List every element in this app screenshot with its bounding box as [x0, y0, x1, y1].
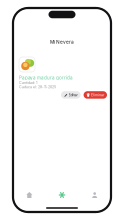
staticText: Caduca el: 28-11-2025 — [19, 85, 56, 89]
staticText: Mi Nevera — [50, 39, 74, 45]
button[interactable]: Editar — [61, 91, 81, 99]
button[interactable]: Mi Nevera — [46, 186, 78, 204]
staticText: Editar — [69, 93, 78, 97]
staticText: Eliminar — [91, 93, 104, 97]
button[interactable]: Perfil — [78, 186, 111, 204]
button[interactable]: Eliminar — [84, 91, 107, 99]
button[interactable]: Inicio — [13, 186, 46, 204]
staticText: Cantidad: 1 — [19, 80, 37, 85]
staticText: Papaya madura gorrida — [19, 75, 73, 80]
